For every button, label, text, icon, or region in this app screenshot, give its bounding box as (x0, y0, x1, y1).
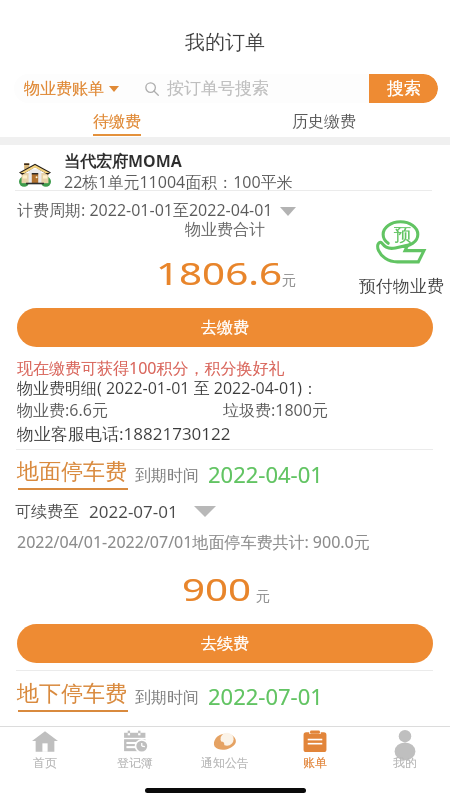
staticText: 到期时间 (135, 688, 199, 708)
staticText: 去缴费 (201, 318, 249, 338)
staticText: 到期时间 (135, 466, 199, 486)
staticText: 历史缴费 (292, 112, 356, 132)
staticText: 登记簿 (117, 755, 153, 770)
other: 首页 (32, 730, 58, 753)
button[interactable]: 去缴费 (17, 308, 433, 347)
button[interactable]: 预 (358, 220, 444, 297)
staticText: 1806.6 (156, 252, 282, 294)
staticText: 2022-07-01 (89, 500, 178, 523)
other: 我的 (392, 730, 418, 753)
button[interactable]: 我的 (360, 727, 450, 800)
button[interactable]: 历史缴费 (292, 112, 356, 132)
other: 登记簿 (122, 730, 148, 753)
staticText: 900 (182, 568, 252, 610)
button[interactable]: 计费周期: 2022-01-01至2022-04-01 (17, 199, 296, 221)
staticText: 通知公告 (201, 755, 249, 770)
staticText: 待缴费 (93, 112, 141, 132)
staticText: 元 (282, 272, 296, 290)
button[interactable]: 地下停车费 (17, 680, 127, 708)
staticText: 2022-04-01 (208, 459, 323, 489)
button[interactable]: 待缴费 (93, 112, 141, 136)
staticText: 首页 (33, 755, 57, 770)
staticText: 现在缴费可获得100积分，积分换好礼 (17, 357, 285, 379)
button[interactable]: 物业费账单 (14, 74, 125, 103)
other: 通知公告 (212, 730, 238, 753)
staticText: 计费周期: 2022-01-01至2022-04-01 (17, 199, 273, 221)
staticText: 物业费明细( 2022-01-01 至 2022-04-01)： (17, 377, 319, 399)
button[interactable]: 搜索 (369, 74, 438, 103)
staticText: 按订单号搜索 (167, 78, 269, 99)
staticText: 可续费至 (15, 502, 79, 522)
button[interactable]: 登记簿 (90, 727, 180, 800)
button[interactable]: 首页 (0, 727, 90, 800)
staticText: 22栋1单元11004面积：100平米 (64, 171, 293, 193)
button[interactable]: 账单 (270, 727, 360, 800)
staticText: 2022-07-01 (208, 681, 323, 711)
staticText: 搜索 (387, 78, 421, 99)
staticText: 物业费合计 (185, 220, 265, 240)
staticText: 垃圾费:1800元 (223, 399, 328, 421)
staticText: 我的订单 (185, 30, 265, 55)
staticText: 地下停车费 (17, 680, 127, 708)
button[interactable]: 去续费 (17, 624, 433, 663)
staticText: 元 (256, 588, 270, 606)
button[interactable]: 地面停车费 (17, 458, 127, 486)
staticText: 物业客服电话:18821730122 (17, 422, 231, 445)
button[interactable]: 可续费至 (15, 500, 216, 523)
staticText: 去续费 (201, 634, 249, 654)
button[interactable]: 通知公告 (180, 727, 270, 800)
staticText: 账单 (303, 755, 327, 770)
staticText: 地面停车费 (17, 458, 127, 486)
staticText: 物业费:6.6元 (17, 399, 108, 421)
staticText: 2022/04/01-2022/07/01地面停车费共计: 900.0元 (17, 531, 370, 553)
staticText: 我的 (393, 755, 417, 770)
staticText: 预付物业费 (359, 276, 444, 297)
other: 账单 (302, 730, 328, 753)
staticText: 预 (394, 224, 412, 247)
staticText: 物业费账单 (24, 79, 104, 99)
staticText: 当代宏府MOMA (64, 150, 182, 172)
